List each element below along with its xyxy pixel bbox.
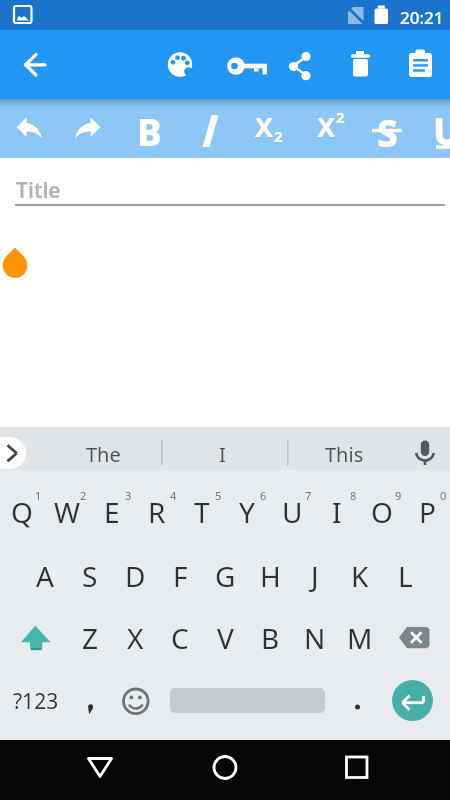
staticText: This: [325, 441, 364, 468]
staticText: S: [82, 557, 98, 595]
staticText: Q: [11, 493, 33, 531]
staticText: B: [137, 106, 162, 154]
button[interactable]: [12, 615, 58, 661]
staticText: V: [217, 619, 234, 657]
button[interactable]: [0, 437, 26, 469]
staticText: ?123: [13, 687, 59, 716]
button[interactable]: [68, 678, 113, 724]
button[interactable]: [333, 744, 381, 792]
staticText: K: [351, 557, 369, 595]
button[interactable]: K: [320, 552, 400, 600]
button[interactable]: F: [140, 552, 220, 600]
button[interactable]: B: [109, 106, 189, 154]
button[interactable]: S: [347, 107, 427, 155]
button[interactable]: [201, 744, 249, 792]
button[interactable]: I: [297, 488, 377, 536]
staticText: Y: [239, 493, 255, 531]
button[interactable]: [391, 615, 437, 661]
staticText: U: [433, 105, 450, 153]
button[interactable]: L: [365, 552, 445, 600]
button[interactable]: [392, 680, 433, 721]
staticText: R: [148, 493, 166, 531]
button[interactable]: [64, 107, 112, 155]
staticText: 4: [170, 488, 177, 503]
button[interactable]: Y: [207, 488, 287, 536]
staticText: F: [173, 557, 188, 595]
staticText: M: [347, 619, 373, 657]
button[interactable]: [186, 107, 234, 155]
button[interactable]: V: [185, 614, 265, 662]
button[interactable]: R: [117, 488, 197, 536]
button[interactable]: E: [72, 488, 152, 536]
staticText: T: [194, 493, 210, 531]
button[interactable]: [154, 41, 202, 89]
button[interactable]: W: [27, 488, 107, 536]
button[interactable]: [335, 678, 380, 724]
staticText: 7: [305, 488, 312, 503]
staticText: 3: [125, 488, 132, 503]
button[interactable]: X: [286, 102, 366, 150]
button[interactable]: J: [275, 552, 355, 600]
button[interactable]: The: [63, 430, 143, 478]
staticText: N: [304, 619, 326, 657]
staticText: 1: [35, 488, 42, 503]
staticText: 20:21: [400, 6, 444, 29]
staticText: S: [377, 107, 398, 155]
button[interactable]: [76, 744, 124, 792]
button[interactable]: A: [5, 552, 85, 600]
button[interactable]: I: [182, 430, 262, 478]
staticText: P: [419, 493, 436, 531]
button[interactable]: N: [275, 614, 355, 662]
button[interactable]: Q: [0, 488, 62, 536]
staticText: 8: [350, 488, 357, 503]
staticText: C: [171, 619, 189, 657]
staticText: 5: [215, 488, 222, 503]
staticText: B: [261, 619, 280, 657]
staticText: E: [104, 493, 120, 531]
button[interactable]: O: [342, 488, 422, 536]
button[interactable]: B: [230, 614, 310, 662]
button[interactable]: [112, 678, 158, 724]
button[interactable]: [22, 40, 70, 88]
staticText: I: [219, 441, 226, 468]
staticText: G: [215, 557, 236, 595]
button[interactable]: [335, 41, 383, 89]
button[interactable]: C: [140, 614, 220, 662]
staticText: X: [317, 108, 336, 145]
button[interactable]: D: [95, 552, 175, 600]
button[interactable]: [395, 41, 443, 89]
button[interactable]: ?123: [0, 677, 76, 725]
staticText: D: [125, 557, 146, 595]
button[interactable]: [219, 41, 267, 89]
button[interactable]: U: [407, 105, 450, 153]
button[interactable]: G: [185, 552, 265, 600]
staticText: H: [260, 557, 281, 595]
button[interactable]: H: [230, 552, 310, 600]
button[interactable]: Z: [50, 614, 130, 662]
staticText: The: [86, 441, 121, 468]
button[interactable]: U: [252, 488, 332, 536]
button[interactable]: S: [50, 552, 130, 600]
button[interactable]: M: [320, 614, 400, 662]
staticText: 0: [440, 488, 447, 503]
staticText: 2: [274, 126, 283, 146]
staticText: 6: [260, 488, 267, 503]
button[interactable]: [6, 107, 54, 155]
staticText: J: [311, 557, 319, 595]
button[interactable]: This: [304, 430, 384, 478]
button[interactable]: [275, 41, 323, 89]
staticText: U: [282, 493, 303, 531]
staticText: X: [127, 619, 144, 657]
button[interactable]: X: [95, 614, 175, 662]
staticText: 2: [80, 488, 87, 503]
staticText: I: [332, 493, 342, 531]
button[interactable]: P: [387, 488, 450, 536]
button[interactable]: X: [224, 102, 304, 150]
staticText: Title: [16, 176, 61, 205]
staticText: L: [398, 557, 413, 595]
staticText: 9: [395, 488, 402, 503]
staticText: A: [36, 557, 54, 595]
button[interactable]: T: [162, 488, 242, 536]
staticText: X: [255, 108, 274, 145]
